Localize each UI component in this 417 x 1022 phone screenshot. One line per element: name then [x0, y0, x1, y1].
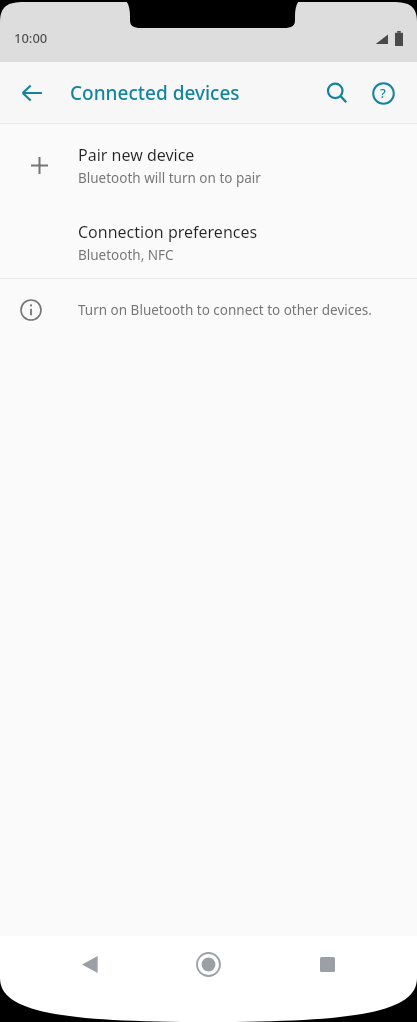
staticText: Connection preferences [78, 221, 258, 243]
staticText: 10:00 [14, 29, 48, 47]
button[interactable]: Help [359, 69, 407, 117]
button[interactable]: Back [62, 936, 118, 992]
button[interactable]: Connection preferences [0, 206, 417, 278]
staticText: Connected devices [70, 80, 313, 106]
button[interactable]: Recent apps [299, 936, 355, 992]
staticText: Bluetooth will turn on to pair [78, 169, 261, 187]
button[interactable]: Pair new device [0, 124, 417, 206]
staticText: Turn on Bluetooth to connect to other de… [78, 301, 372, 319]
staticText: Pair new device [78, 144, 195, 166]
staticText: ? [380, 84, 386, 102]
button[interactable]: Home [180, 936, 236, 992]
staticText: Bluetooth, NFC [78, 246, 174, 264]
button[interactable]: Search [313, 69, 361, 117]
button[interactable]: Back [8, 69, 56, 117]
